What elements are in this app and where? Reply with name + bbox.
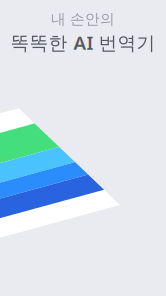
staticText: 똑똑한 AI 번역기 — [10, 30, 155, 55]
staticText: 내 손안의 — [51, 10, 115, 28]
